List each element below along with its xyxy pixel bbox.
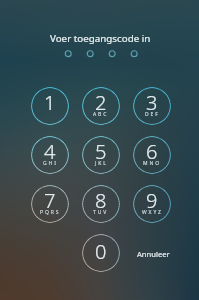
button[interactable]: 7 — [31, 185, 69, 223]
staticText: 0 — [95, 238, 107, 265]
button[interactable]: 0 — [82, 234, 120, 272]
staticText: 9 — [146, 187, 158, 214]
button[interactable]: 6 — [133, 136, 171, 174]
button[interactable]: 5 — [82, 136, 120, 174]
staticText: ABC — [93, 111, 109, 118]
staticText: Annuleer — [137, 249, 170, 259]
staticText: Voer toegangscode in — [50, 32, 151, 45]
staticText: GHI — [43, 160, 58, 167]
staticText: TUV — [93, 209, 109, 216]
staticText: JKL — [95, 160, 108, 167]
staticText: 6 — [146, 138, 158, 165]
staticText: PQRS — [40, 209, 61, 216]
staticText: 3 — [146, 89, 158, 116]
staticText: MNO — [143, 160, 161, 167]
staticText: 2 — [95, 89, 107, 116]
staticText: WXYZ — [142, 209, 163, 216]
staticText: DEF — [145, 111, 160, 118]
staticText: 7 — [44, 187, 56, 214]
button[interactable]: Annuleer — [131, 239, 175, 268]
staticText: 8 — [95, 187, 107, 214]
button[interactable]: 9 — [133, 185, 171, 223]
staticText: 1 — [44, 89, 56, 116]
button[interactable]: 1 — [31, 87, 69, 125]
staticText: 4 — [44, 138, 56, 165]
button[interactable]: 3 — [133, 87, 171, 125]
button[interactable]: 4 — [31, 136, 69, 174]
button[interactable]: 8 — [82, 185, 120, 223]
staticText: 5 — [95, 138, 107, 165]
button[interactable]: 2 — [82, 87, 120, 125]
